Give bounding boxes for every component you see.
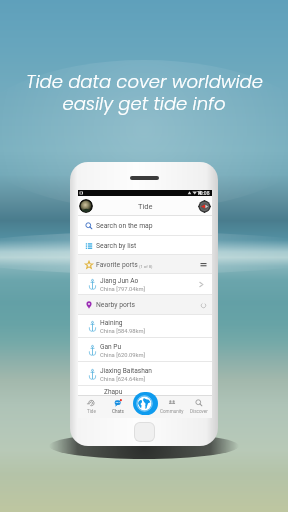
staticText: China [624.64km] xyxy=(100,376,146,383)
button[interactable]: Jiang Jun Ao xyxy=(78,274,212,295)
staticText: Jiang Jun Ao xyxy=(100,277,139,285)
staticText: Jiaxing Baitashan xyxy=(100,367,152,375)
staticText: China [584.98km] xyxy=(100,328,146,335)
button[interactable]: Community xyxy=(158,395,185,418)
staticText: Favorite ports xyxy=(96,261,138,269)
staticText: China [797.04km] xyxy=(100,286,146,293)
button[interactable]: Search by list xyxy=(78,236,212,255)
other: Sort ports xyxy=(200,261,207,268)
staticText: Gan Pu xyxy=(100,343,122,351)
button[interactable]: Jiaxing Baitashan xyxy=(78,362,212,386)
staticText: Search by list xyxy=(96,242,137,250)
staticText: Community xyxy=(160,409,184,414)
staticText: Discover xyxy=(190,409,208,414)
button[interactable]: Profile xyxy=(79,199,93,213)
staticText: (1 of 8) xyxy=(139,264,153,269)
button[interactable]: Discover xyxy=(185,395,212,418)
staticText: easily get tide info xyxy=(62,91,226,116)
staticText: Tide data cover worldwide xyxy=(26,69,263,94)
button[interactable]: Tide xyxy=(78,395,104,418)
staticText: China [620.09km] xyxy=(100,352,146,359)
staticText: Chats xyxy=(112,409,124,414)
other: Refresh xyxy=(200,302,207,309)
staticText: Zhapu xyxy=(104,388,123,396)
button[interactable]: Compass xyxy=(198,200,211,213)
button[interactable]: Chats xyxy=(104,395,131,418)
button[interactable]: Search on the map xyxy=(78,216,212,236)
staticText: Tide xyxy=(138,202,153,211)
staticText: Haining xyxy=(100,319,123,327)
button[interactable]: Haining xyxy=(78,315,212,338)
button[interactable]: Explore globe xyxy=(133,392,158,415)
staticText: Tide xyxy=(87,409,96,414)
button[interactable]: Favorite ports xyxy=(78,255,212,274)
staticText: Search on the map xyxy=(96,222,153,230)
staticText: Nearby ports xyxy=(96,301,136,309)
staticText: 10:08 xyxy=(197,190,210,196)
button[interactable]: Gan Pu xyxy=(78,338,212,362)
button[interactable]: Nearby ports xyxy=(78,295,212,315)
